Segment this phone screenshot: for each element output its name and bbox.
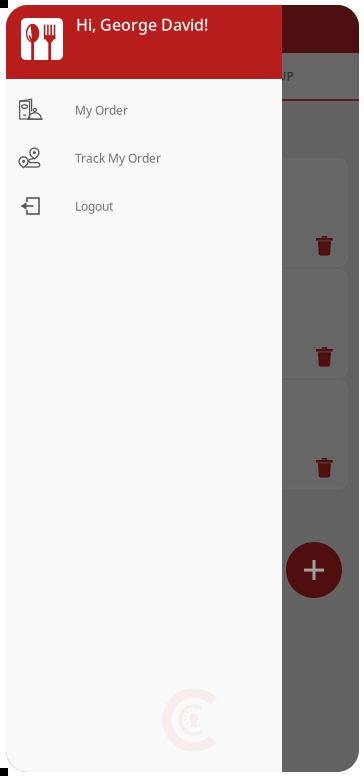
button[interactable]: Track My Order — [6, 134, 282, 182]
button[interactable]: My Order — [6, 86, 282, 134]
staticText: Logout — [75, 198, 113, 214]
button[interactable] — [18, 381, 347, 488]
staticText: PICKUP — [250, 68, 293, 84]
staticText: Hi, George David! — [76, 14, 208, 35]
staticText: DELIVERY — [131, 68, 188, 84]
button[interactable] — [18, 159, 347, 266]
staticText: My Order — [75, 102, 128, 118]
button[interactable]: Add order — [282, 538, 346, 602]
button[interactable]: PICKUP — [216, 53, 328, 99]
button[interactable] — [18, 270, 347, 377]
button[interactable]: DELIVERY — [104, 53, 216, 99]
button[interactable]: Logout — [6, 182, 282, 230]
staticText: Track My Order — [75, 150, 161, 166]
